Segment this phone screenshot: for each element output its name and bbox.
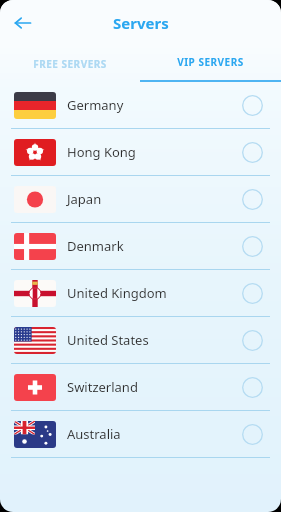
staticText: Germany — [67, 96, 124, 114]
button[interactable]: Australia — [0, 411, 281, 458]
staticText: Japan — [67, 190, 102, 208]
staticText: VIP SERVERS — [177, 55, 244, 69]
staticText: United States — [67, 331, 149, 349]
staticText: Switzerland — [67, 378, 138, 396]
button[interactable]: Germany — [0, 82, 281, 129]
staticText: Hong Kong — [67, 143, 136, 161]
button[interactable]: Back — [8, 8, 38, 38]
staticText: Servers — [113, 13, 169, 33]
staticText: FREE SERVERS — [33, 57, 107, 71]
staticText: United Kingdom — [67, 284, 167, 302]
staticText: Denmark — [67, 237, 124, 255]
button[interactable]: Japan — [0, 176, 281, 223]
button[interactable]: Denmark — [0, 223, 281, 270]
staticText: Australia — [67, 425, 121, 443]
button[interactable]: United States — [0, 317, 281, 364]
button[interactable]: FREE SERVERS — [0, 45, 140, 82]
button[interactable]: Switzerland — [0, 364, 281, 411]
button[interactable]: Hong Kong — [0, 129, 281, 176]
button[interactable]: VIP SERVERS — [140, 45, 281, 82]
button[interactable]: United Kingdom — [0, 270, 281, 317]
